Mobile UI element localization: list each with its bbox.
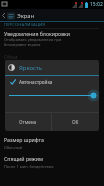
staticText: Размер шрифта (4, 136, 44, 143)
button[interactable]: Отмена (5, 113, 51, 131)
staticText: Обои (4, 53, 18, 60)
button[interactable]: Автонастройка (5, 77, 99, 87)
staticText: Экран (17, 12, 35, 20)
button[interactable]: OK (52, 113, 99, 131)
staticText: 15:02 (90, 1, 103, 8)
staticText: Автонастройка (19, 79, 53, 85)
staticText: Отображать уведомления при блокировке эк… (4, 37, 62, 47)
staticText: Отмена (19, 119, 37, 125)
button[interactable]: Back (0, 9, 7, 22)
staticText: После 1 мин. бездействия (4, 164, 54, 169)
staticText: ПЕРСОНАЛИЗАЦИЯ (4, 22, 46, 28)
staticText: Обычный (4, 145, 23, 150)
staticText: Спящий режим (4, 155, 43, 162)
staticText: OK (72, 119, 79, 125)
staticText: Яркость (19, 64, 43, 72)
staticText: Уведомления блокировки (4, 30, 71, 37)
